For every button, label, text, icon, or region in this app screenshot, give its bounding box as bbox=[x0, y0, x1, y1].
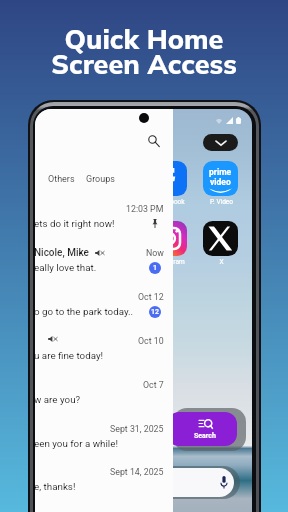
staticText: Others bbox=[48, 174, 75, 185]
staticText: e, thanks! bbox=[35, 481, 76, 492]
staticText: Search bbox=[194, 432, 216, 440]
button[interactable]: Oct 7 bbox=[35, 375, 173, 417]
button[interactable]: Sept 14, 2025 bbox=[35, 462, 173, 504]
button[interactable]: Expand notifications bbox=[203, 134, 238, 151]
button[interactable]: Search widget bbox=[167, 412, 237, 446]
staticText: Oct 12 bbox=[138, 292, 164, 302]
staticText: w are you? bbox=[35, 394, 81, 405]
button[interactable]: Oct 12 bbox=[35, 287, 173, 329]
staticText: een you for a while! bbox=[35, 438, 118, 449]
button[interactable]: Instagram bbox=[152, 221, 187, 268]
staticText: eally love that. bbox=[35, 262, 97, 273]
staticText: Sept 31, 2025 bbox=[110, 424, 164, 434]
staticText: o go to the park today.. bbox=[35, 306, 134, 317]
button[interactable]: Others bbox=[44, 171, 79, 188]
button[interactable]: X bbox=[203, 221, 238, 268]
button[interactable]: Facebook bbox=[152, 161, 187, 208]
staticText: Oct 10 bbox=[138, 336, 164, 346]
staticText: ets do it right now! bbox=[35, 218, 115, 229]
staticText: P. Video bbox=[210, 198, 233, 206]
button[interactable]: Sept 31, 2025 bbox=[35, 419, 173, 461]
staticText: Groups bbox=[86, 174, 115, 185]
staticText: Oct 7 bbox=[143, 380, 164, 390]
button[interactable]: 12:03 PM bbox=[35, 199, 173, 241]
staticText: 12:03 PM bbox=[126, 204, 164, 214]
staticText: Facebook bbox=[156, 198, 185, 206]
button[interactable]: Groups bbox=[82, 171, 119, 188]
button[interactable]: P. Video bbox=[203, 161, 238, 208]
staticText: video bbox=[210, 177, 231, 187]
staticText: Instagram bbox=[155, 258, 185, 266]
staticText: Quick Home Screen Access bbox=[0, 22, 288, 81]
staticText: X bbox=[219, 258, 224, 266]
button[interactable]: Google search bbox=[149, 468, 234, 497]
staticText: Sept 14, 2025 bbox=[110, 467, 164, 477]
staticText: prime bbox=[209, 167, 232, 177]
staticText: 1 bbox=[153, 264, 157, 272]
staticText: 12 bbox=[151, 308, 159, 316]
staticText: Nicole, Mike bbox=[35, 247, 89, 259]
staticText: u are fine today! bbox=[35, 350, 104, 361]
staticText: Now bbox=[146, 248, 164, 258]
button[interactable]: Search bbox=[143, 130, 166, 153]
button[interactable]: Oct 10 bbox=[35, 331, 173, 373]
button[interactable]: Now bbox=[35, 243, 173, 285]
